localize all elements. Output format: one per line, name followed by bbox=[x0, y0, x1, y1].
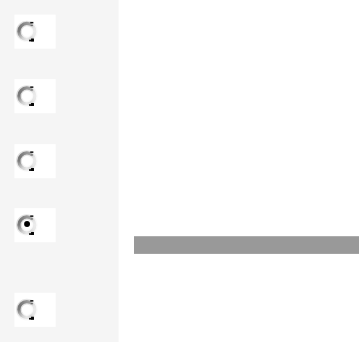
button[interactable]: Custom bbox=[14, 293, 56, 328]
button[interactable]: Priority bbox=[14, 208, 56, 243]
button[interactable]: Economy bbox=[14, 79, 56, 114]
button[interactable]: Express bbox=[14, 144, 56, 179]
button[interactable]: Standard bbox=[14, 15, 56, 50]
button[interactable]: Details bbox=[134, 236, 359, 254]
